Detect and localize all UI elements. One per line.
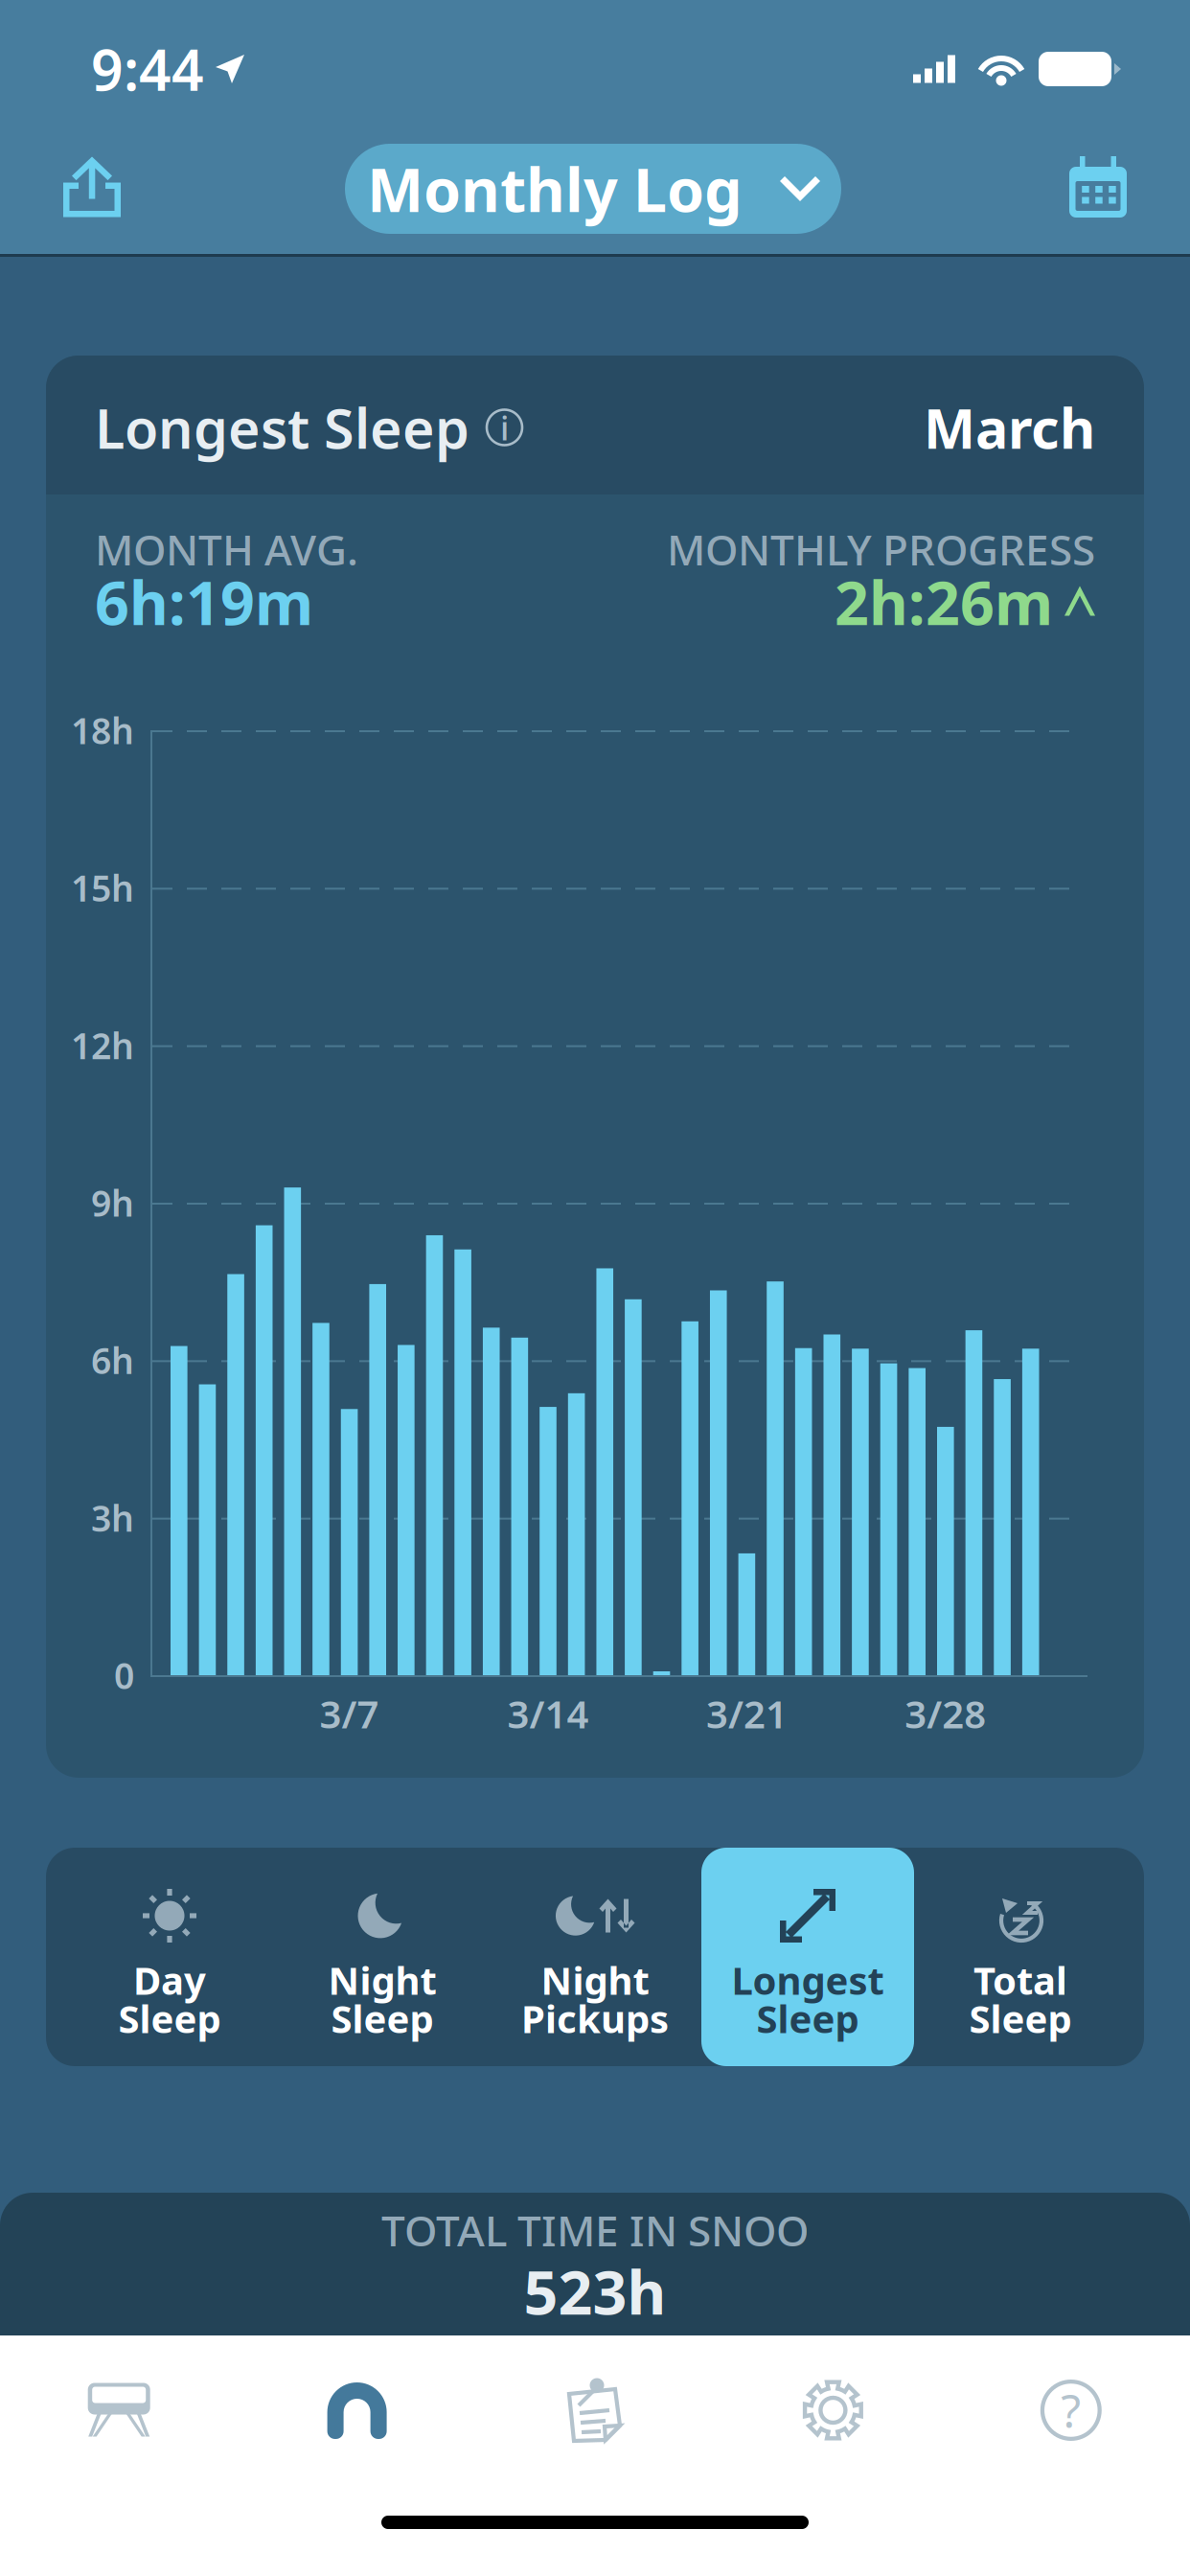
staticText: 3/14 bbox=[507, 1688, 589, 1739]
staticText: Longest Sleep bbox=[95, 391, 469, 464]
staticText: 523h bbox=[524, 2252, 666, 2331]
button[interactable]: Help bbox=[952, 2335, 1190, 2485]
staticText: Sleep bbox=[331, 1993, 434, 2044]
staticText: Sleep bbox=[756, 1993, 859, 2044]
button[interactable]: Notes bbox=[476, 2335, 714, 2485]
staticText: i bbox=[500, 405, 509, 449]
button[interactable]: Settings bbox=[714, 2335, 952, 2485]
staticText: Night bbox=[328, 1954, 436, 2005]
staticText: Pickups bbox=[521, 1993, 669, 2044]
button[interactable]: Share bbox=[38, 146, 146, 228]
staticText: MONTH AVG. bbox=[95, 521, 358, 577]
button[interactable]: Total bbox=[914, 1848, 1127, 2066]
staticText: 18h bbox=[71, 706, 134, 754]
staticText: ? bbox=[1061, 2380, 1081, 2441]
staticText: 9:44 bbox=[91, 32, 204, 106]
staticText: 3h bbox=[91, 1494, 134, 1541]
staticText: 2h:26m bbox=[835, 562, 1053, 642]
button[interactable]: Day bbox=[63, 1848, 276, 2066]
staticText: 3/7 bbox=[320, 1688, 379, 1739]
staticText: Day bbox=[133, 1954, 206, 2005]
staticText: 15h bbox=[71, 864, 134, 911]
button[interactable]: Longest bbox=[701, 1848, 914, 2066]
button[interactable]: Bassinet bbox=[0, 2335, 238, 2485]
staticText: 6h bbox=[91, 1336, 134, 1384]
staticText: MONTHLY PROGRESS bbox=[667, 521, 1095, 577]
staticText: Monthly Log bbox=[367, 149, 743, 229]
staticText: Sleep bbox=[969, 1993, 1072, 2044]
button[interactable]: Night bbox=[489, 1848, 701, 2066]
staticText: Total bbox=[973, 1954, 1067, 2005]
button[interactable]: Calendar bbox=[1044, 146, 1152, 228]
button[interactable]: Monthly Log bbox=[345, 144, 841, 234]
staticText: 6h:19m bbox=[95, 562, 313, 642]
staticText: TOTAL TIME IN SNOO bbox=[381, 2202, 809, 2258]
button[interactable]: Night bbox=[276, 1848, 489, 2066]
staticText: 0 bbox=[114, 1651, 134, 1699]
staticText: Night bbox=[541, 1954, 649, 2005]
staticText: Sleep bbox=[118, 1993, 221, 2044]
button[interactable]: Sleep history bbox=[238, 2335, 476, 2485]
staticText: Longest bbox=[732, 1954, 884, 2005]
staticText: 9h bbox=[91, 1179, 134, 1226]
staticText: 3/21 bbox=[706, 1688, 787, 1739]
staticText: March bbox=[924, 391, 1095, 464]
staticText: 3/28 bbox=[905, 1688, 986, 1739]
staticText: 12h bbox=[71, 1021, 134, 1069]
